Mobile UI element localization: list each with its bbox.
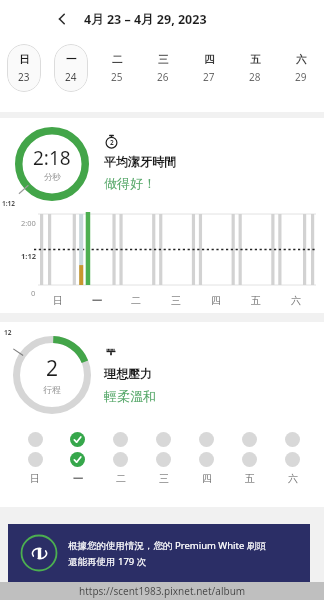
staticText: 六 (288, 472, 298, 485)
staticText: 根據您的使用情況，您的 Premium White 刷頭 (68, 539, 266, 552)
staticText: 行程 (43, 384, 61, 395)
staticText: 29 (295, 70, 307, 84)
staticText: 三 (158, 53, 169, 66)
staticText: 4月 23 – 4月 29, 2023 (84, 11, 207, 28)
staticText: 四 (204, 53, 215, 66)
staticText: 五 (251, 294, 261, 307)
staticText: 六 (291, 294, 301, 307)
staticText: 六 (296, 53, 307, 66)
button[interactable]: 四 (192, 44, 226, 92)
staticText: 平均潔牙時間 (104, 154, 176, 169)
staticText: 一 (92, 294, 102, 307)
button[interactable]: 2:18 (0, 118, 324, 313)
staticText: 0 (31, 288, 36, 298)
staticText: 二 (116, 472, 126, 485)
button[interactable]: 根據您的使用情況，您的 Premium White 刷頭 (8, 524, 310, 582)
staticText: 五 (245, 472, 255, 485)
staticText: 2 (110, 138, 114, 147)
staticText: https://scent1983.pixnet.net/album (79, 584, 246, 598)
staticText: 五 (250, 53, 261, 66)
staticText: 三 (171, 294, 181, 307)
staticText: 2:00 (21, 218, 36, 228)
button[interactable]: 2 (0, 322, 324, 507)
button[interactable]: 一 (54, 44, 88, 92)
staticText: 23 (18, 70, 30, 84)
staticText: 28 (249, 70, 261, 84)
staticText: 理想壓力 (104, 366, 152, 381)
staticText: 26 (157, 70, 169, 84)
staticText: 做得好！ (104, 175, 156, 191)
button[interactable]: 二 (100, 44, 134, 92)
staticText: 三 (159, 472, 169, 485)
staticText: 1:12 (21, 251, 36, 261)
staticText: 24 (65, 70, 77, 84)
staticText: 12 (4, 328, 12, 337)
button[interactable]: 五 (238, 44, 272, 92)
staticText: 日 (30, 472, 40, 485)
staticText: 1:12 (2, 199, 15, 208)
staticText: 一 (73, 472, 83, 485)
button[interactable]: Back (52, 9, 72, 29)
staticText: 2 (46, 354, 59, 383)
staticText: 二 (112, 53, 123, 66)
staticText: 25 (111, 70, 123, 84)
button[interactable]: 日 (7, 44, 41, 92)
staticText: 2:18 (33, 145, 71, 171)
staticText: 二 (131, 294, 141, 307)
button[interactable]: 三 (146, 44, 180, 92)
staticText: 輕柔溫和 (104, 388, 156, 404)
staticText: 四 (211, 294, 221, 307)
staticText: 一 (66, 53, 77, 66)
staticText: 27 (203, 70, 215, 84)
staticText: 日 (53, 294, 63, 307)
staticText: 還能再使用 179 次 (68, 555, 147, 568)
staticText: 日 (19, 53, 30, 66)
button[interactable]: 六 (284, 44, 318, 92)
staticText: 分秒 (44, 172, 61, 183)
staticText: 四 (202, 472, 212, 485)
